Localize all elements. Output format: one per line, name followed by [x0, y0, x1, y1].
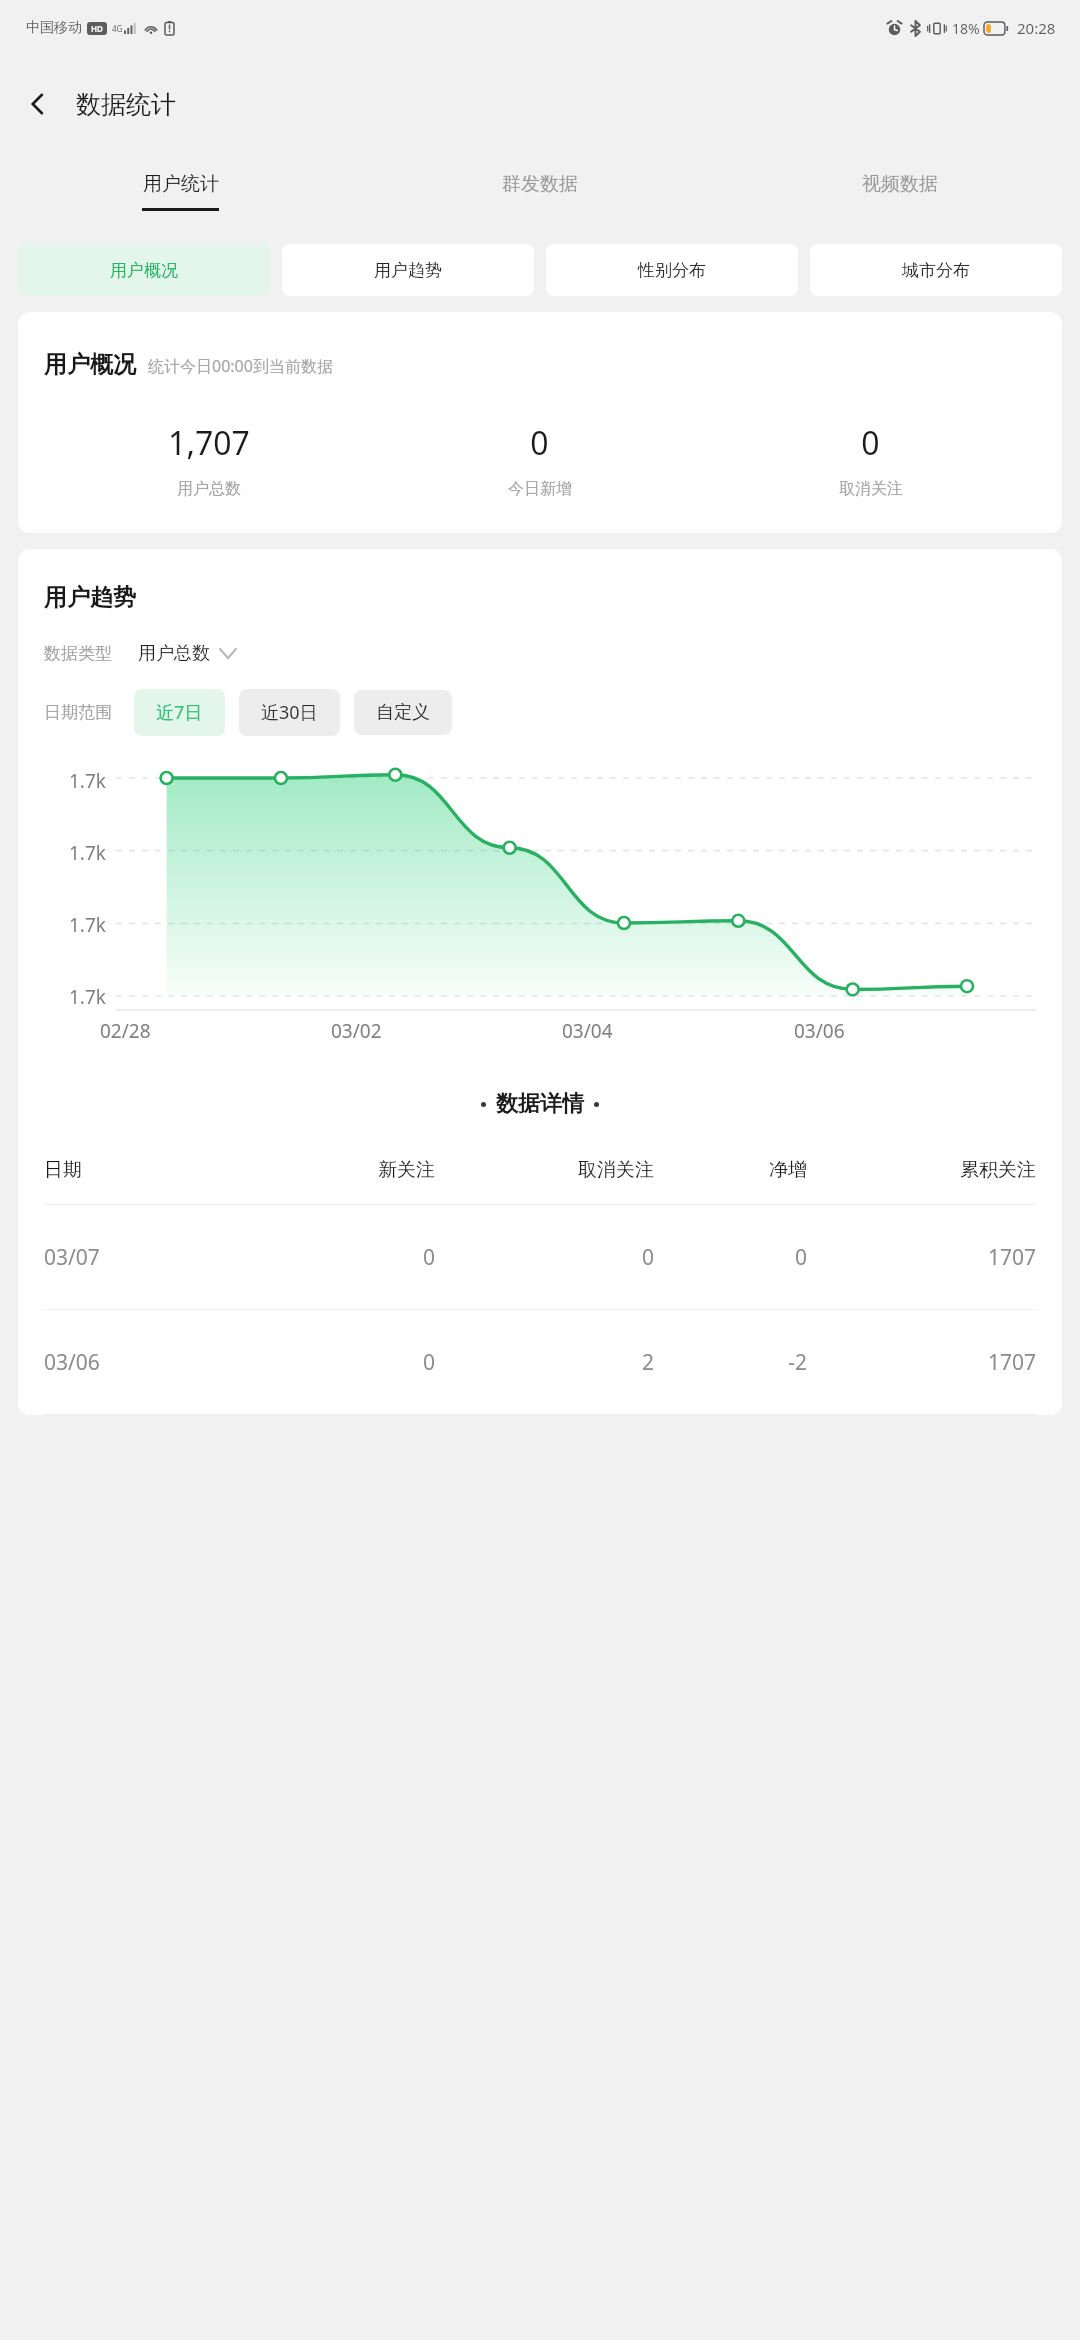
button[interactable]: 用户统计: [0, 152, 360, 230]
staticText: 1707: [807, 1243, 1036, 1272]
staticText: 03/04: [562, 1018, 613, 1044]
button[interactable]: 用户概况: [18, 244, 270, 296]
staticText: 用户总数: [177, 479, 241, 499]
button[interactable]: 用户总数: [138, 642, 236, 665]
button[interactable]: 返回: [10, 76, 66, 132]
staticText: 数据详情: [496, 1090, 584, 1118]
staticText: 2: [435, 1348, 654, 1377]
staticText: 城市分布: [902, 260, 970, 281]
staticText: 0: [654, 1243, 807, 1272]
staticText: 用户概况: [110, 260, 178, 281]
button[interactable]: 视频数据: [720, 152, 1080, 230]
staticText: 02/28: [100, 1018, 151, 1044]
staticText: 1,707: [168, 421, 250, 465]
button[interactable]: 03/07: [44, 1205, 1036, 1309]
staticText: 统计今日00:00到当前数据: [148, 355, 333, 377]
staticText: 1.7k: [69, 840, 106, 866]
staticText: 20:28: [1017, 18, 1056, 38]
staticText: 1.7k: [69, 912, 106, 938]
staticText: 03/06: [44, 1348, 244, 1377]
staticText: 日期: [44, 1158, 244, 1182]
button[interactable]: 自定义: [354, 690, 452, 735]
staticText: 18%: [952, 19, 980, 38]
staticText: 今日新增: [508, 479, 572, 499]
button[interactable]: 群发数据: [360, 152, 720, 230]
staticText: 1.7k: [69, 984, 106, 1010]
staticText: 用户总数: [138, 642, 210, 665]
button[interactable]: 性别分布: [546, 244, 798, 296]
button[interactable]: 03/06: [44, 1310, 1036, 1414]
button[interactable]: 城市分布: [810, 244, 1062, 296]
staticText: -2: [654, 1348, 807, 1377]
staticText: 0: [435, 1243, 654, 1272]
staticText: 用户统计: [143, 172, 219, 196]
staticText: 1707: [807, 1348, 1036, 1377]
staticText: 群发数据: [502, 172, 578, 196]
staticText: 日期范围: [44, 702, 112, 723]
staticText: 0: [244, 1348, 435, 1377]
staticText: 03/02: [331, 1018, 382, 1044]
staticText: 03/07: [44, 1243, 244, 1272]
button[interactable]: 用户趋势: [282, 244, 534, 296]
staticText: 0: [530, 421, 549, 465]
staticText: 自定义: [376, 701, 430, 724]
staticText: HD: [91, 23, 103, 34]
staticText: 用户趋势: [44, 583, 136, 612]
staticText: 4G: [112, 23, 123, 34]
staticText: 1.7k: [69, 768, 106, 794]
staticText: 近30日: [261, 700, 318, 725]
staticText: 取消关注: [839, 479, 903, 499]
staticText: 数据类型: [44, 643, 112, 664]
staticText: 中国移动: [26, 19, 82, 37]
staticText: 0: [244, 1243, 435, 1272]
staticText: 累积关注: [807, 1158, 1036, 1182]
staticText: 用户趋势: [374, 260, 442, 281]
staticText: 视频数据: [862, 172, 938, 196]
button[interactable]: 近7日: [134, 689, 225, 736]
staticText: 近7日: [156, 700, 203, 725]
staticText: 净增: [654, 1158, 807, 1182]
staticText: 性别分布: [638, 260, 706, 281]
staticText: 用户概况: [44, 350, 136, 379]
staticText: 取消关注: [435, 1158, 654, 1182]
staticText: 新关注: [244, 1158, 435, 1182]
staticText: 0: [861, 421, 880, 465]
staticText: 03/06: [794, 1018, 845, 1044]
staticText: 数据统计: [76, 89, 176, 120]
button[interactable]: 近30日: [239, 689, 340, 736]
